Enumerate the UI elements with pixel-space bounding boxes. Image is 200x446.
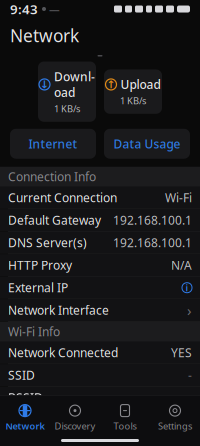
staticText: ↓ — [40, 78, 49, 90]
staticText: Connection Info — [8, 169, 96, 185]
button[interactable]: Internet — [10, 129, 96, 159]
staticText: Vendor — [8, 412, 48, 428]
staticText: Upload — [120, 76, 160, 92]
staticText: Download — [54, 68, 95, 100]
staticText: 1 KB/s — [54, 102, 80, 115]
button[interactable]: ↓ — [38, 61, 96, 122]
button[interactable]: IP Address — [0, 432, 200, 446]
staticText: Network — [5, 420, 44, 432]
staticText: Tools — [113, 420, 136, 432]
staticText: - — [188, 390, 192, 406]
staticText: Discovery — [54, 420, 95, 432]
staticText: Settings — [158, 420, 192, 432]
staticText: 192.168.100.1 — [113, 212, 192, 228]
button[interactable]: SSID — [0, 364, 200, 387]
button[interactable]: Default Gateway — [0, 209, 200, 232]
button[interactable]: External IP — [0, 277, 200, 299]
button[interactable]: Tools — [100, 400, 150, 436]
staticText: External IP — [8, 280, 68, 296]
staticText: IP Address — [8, 435, 68, 446]
button[interactable]: Current Connection — [0, 187, 200, 209]
staticText: - — [188, 412, 192, 428]
button[interactable]: ↑ — [104, 69, 162, 114]
button[interactable]: DNS Server(s) — [0, 232, 200, 254]
staticText: Wi-Fi — [165, 190, 192, 206]
button[interactable]: Network — [0, 400, 50, 436]
staticText: HTTP Proxy — [8, 257, 72, 273]
staticText: 192.168.100.8 — [113, 435, 192, 446]
button[interactable]: BSSID — [0, 387, 200, 409]
staticText: N/A — [171, 257, 192, 273]
staticText: - — [188, 367, 192, 383]
staticText: Default Gateway — [8, 212, 101, 228]
staticText: › — [187, 300, 192, 320]
button[interactable]: HTTP Proxy — [0, 254, 200, 277]
staticText: — — [49, 2, 60, 16]
staticText: i — [185, 281, 188, 294]
staticText: SSID — [8, 367, 35, 383]
staticText: Current Connection — [8, 190, 117, 206]
button[interactable]: Vendor — [0, 409, 200, 432]
staticText: Internet — [28, 136, 77, 152]
button[interactable]: Discovery — [50, 400, 100, 436]
staticText: Network — [10, 24, 79, 47]
staticText: Network Connected — [8, 345, 118, 361]
button[interactable]: Network Interface — [0, 299, 200, 322]
button[interactable]: Data Usage — [104, 129, 190, 159]
staticText: 192.168.100.1 — [113, 235, 192, 251]
staticText: Data Usage — [113, 136, 180, 152]
staticText: Network Interface — [8, 302, 109, 318]
staticText: 9:43 — [10, 0, 38, 18]
staticText: Wi-Fi Info — [8, 324, 60, 340]
button[interactable]: Settings — [150, 400, 200, 436]
staticText: ↑ — [106, 78, 115, 90]
staticText: DNS Server(s) — [8, 235, 87, 251]
button[interactable]: Network Connected — [0, 342, 200, 364]
staticText: 1 KB/s — [120, 94, 146, 107]
staticText: YES — [171, 345, 192, 361]
staticText: BSSID — [8, 390, 43, 406]
